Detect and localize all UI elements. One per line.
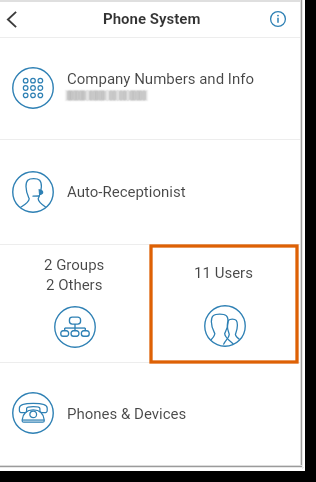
staticText: Phones & Devices [67, 405, 187, 423]
staticText: 2 Groups [44, 256, 105, 274]
staticText: Company Numbers and Info [67, 70, 254, 88]
staticText: 11 Users [194, 264, 253, 282]
button[interactable]: 2 Groups [0, 245, 149, 362]
staticText: Phone System [103, 10, 201, 28]
button[interactable]: Auto-Receptionist [0, 140, 302, 245]
button[interactable]: Back [0, 0, 30, 38]
button[interactable]: Company Numbers and Info [0, 38, 302, 140]
staticText: 2 Others [46, 276, 103, 294]
button[interactable]: Information [263, 0, 293, 38]
staticText: Auto-Receptionist [67, 183, 186, 201]
button[interactable]: Phones & Devices [0, 362, 302, 467]
button[interactable]: 11 Users [149, 245, 302, 362]
